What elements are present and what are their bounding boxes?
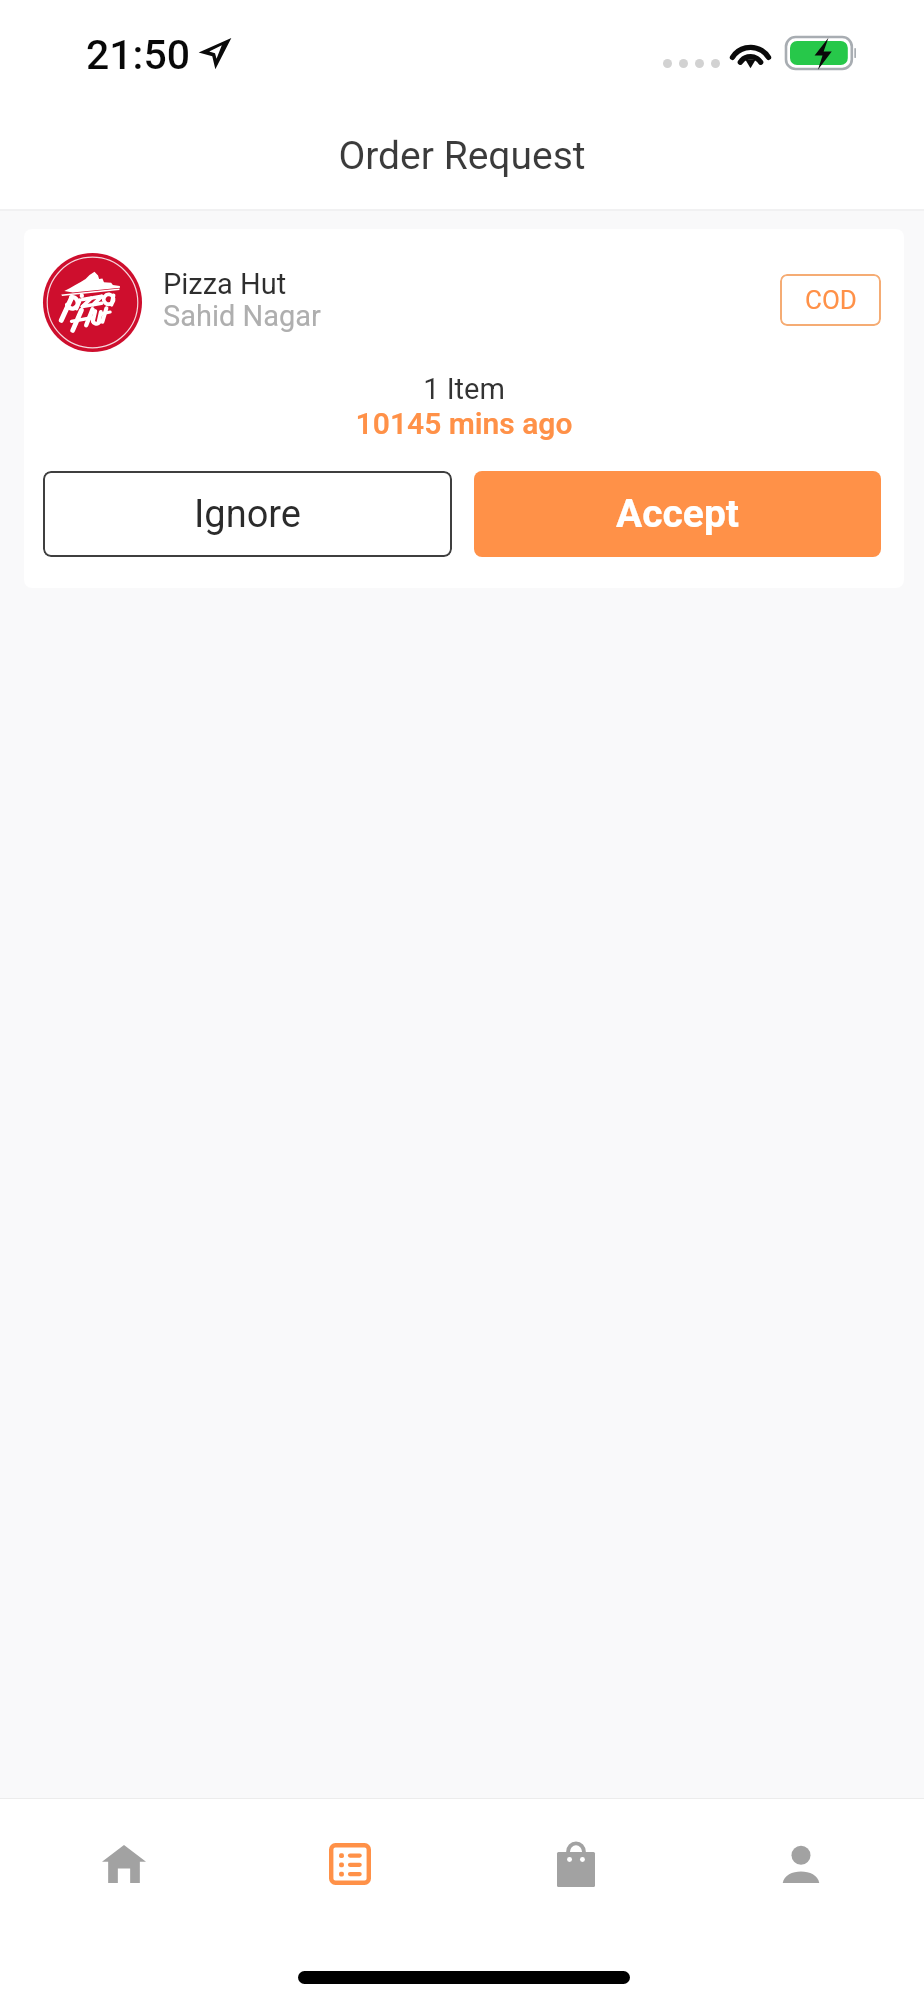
button[interactable]: Home xyxy=(68,1808,180,1920)
staticText: Accept xyxy=(616,491,740,537)
button[interactable]: Profile xyxy=(745,1808,857,1920)
staticText: 10145 mins ago xyxy=(24,406,904,441)
staticText: 21:50 xyxy=(86,31,191,79)
staticText: COD xyxy=(805,285,857,315)
button[interactable]: COD xyxy=(780,274,881,326)
button[interactable]: Ignore xyxy=(43,471,452,557)
button[interactable]: Accept xyxy=(474,471,881,557)
button[interactable]: Orders xyxy=(294,1808,406,1920)
staticText: Sahid Nagar xyxy=(163,299,321,333)
staticText: Ignore xyxy=(194,492,302,537)
staticText: Order Request xyxy=(0,133,924,179)
staticText: 1 Item xyxy=(24,372,904,406)
button[interactable]: Shop xyxy=(520,1808,632,1920)
staticText: Pizza Hut xyxy=(163,267,287,301)
